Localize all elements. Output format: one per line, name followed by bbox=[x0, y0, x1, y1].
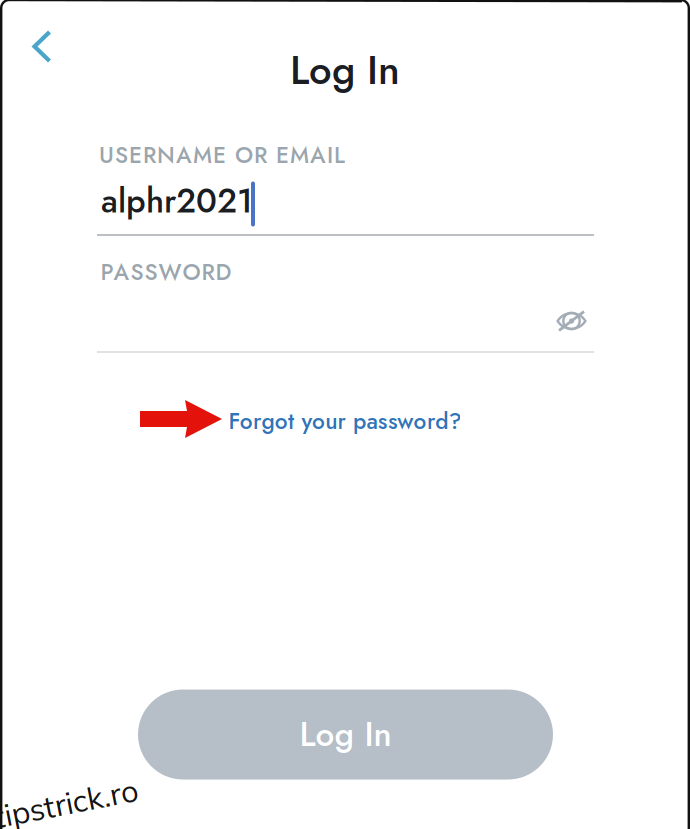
staticText: alphr2021 bbox=[101, 177, 253, 225]
staticText: Forgot your password? bbox=[228, 405, 461, 437]
staticText: tipstrick.ro bbox=[0, 784, 139, 822]
button[interactable]: Log In bbox=[138, 689, 553, 779]
staticText: PASSWORD bbox=[100, 256, 231, 288]
button[interactable]: Show password bbox=[540, 296, 602, 346]
button[interactable]: Forgot your password? bbox=[228, 405, 461, 437]
staticText: Log In bbox=[299, 710, 391, 759]
staticText: Log In bbox=[290, 41, 400, 99]
button[interactable]: Back bbox=[11, 15, 73, 77]
staticText: USERNAME OR EMAIL bbox=[99, 139, 345, 171]
